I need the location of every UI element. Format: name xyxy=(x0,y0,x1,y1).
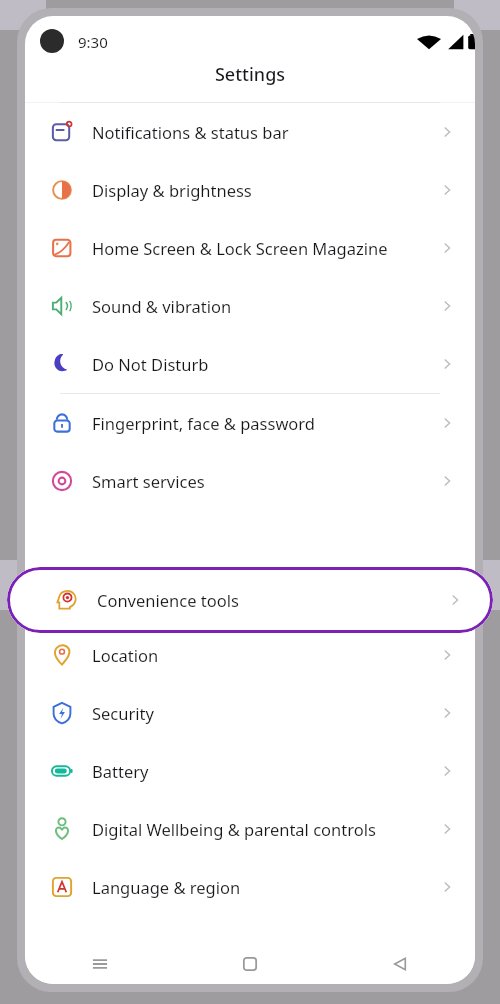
button[interactable]: Menu xyxy=(25,944,175,984)
button[interactable]: Location xyxy=(25,626,475,684)
button[interactable]: Home Screen & Lock Screen Magazine xyxy=(25,219,475,277)
button[interactable]: Language & region xyxy=(25,858,475,916)
staticText: 9:30 xyxy=(78,32,108,52)
button[interactable]: Privacy xyxy=(25,568,475,626)
staticText: Fingerprint, face & password xyxy=(92,412,315,434)
button[interactable]: Back xyxy=(325,944,475,984)
button[interactable]: Digital Wellbeing & parental controls xyxy=(25,800,475,858)
button[interactable]: Do Not Disturb xyxy=(25,335,475,393)
staticText: Battery xyxy=(92,760,149,782)
staticText: Smart services xyxy=(92,470,205,492)
staticText: Display & brightness xyxy=(92,179,252,201)
button[interactable]: Sound & vibration xyxy=(25,277,475,335)
button[interactable]: Notifications & status bar xyxy=(25,103,475,161)
staticText: Sound & vibration xyxy=(92,295,232,317)
button[interactable]: Battery xyxy=(25,742,475,800)
button[interactable]: Security xyxy=(25,684,475,742)
button[interactable]: Smart services xyxy=(25,452,475,510)
staticText: Settings xyxy=(25,62,475,87)
staticText: Home Screen & Lock Screen Magazine xyxy=(92,237,388,259)
staticText: Location xyxy=(92,644,159,666)
button[interactable]: Convenience tools xyxy=(7,567,493,633)
staticText: Do Not Disturb xyxy=(92,353,209,375)
staticText: Language & region xyxy=(92,876,241,898)
button[interactable]: Fingerprint, face & password xyxy=(25,394,475,452)
staticText: Notifications & status bar xyxy=(92,121,289,143)
button[interactable]: Display & brightness xyxy=(25,161,475,219)
staticText: Convenience tools xyxy=(97,589,239,611)
button[interactable]: Home xyxy=(175,944,325,984)
staticText: Privacy xyxy=(92,586,148,608)
staticText: Digital Wellbeing & parental controls xyxy=(92,818,376,840)
staticText: Security xyxy=(92,702,154,724)
